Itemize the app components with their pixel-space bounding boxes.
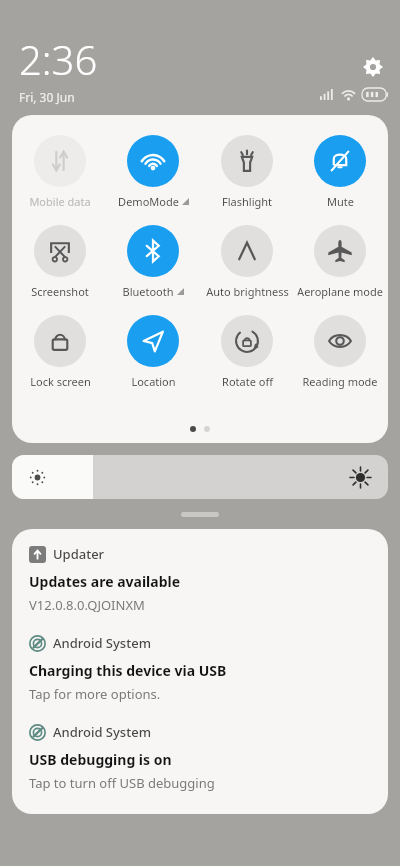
button[interactable]: Location (108, 313, 198, 391)
button[interactable]: Screenshot (15, 223, 105, 301)
staticText: 2:36 (19, 32, 98, 86)
button[interactable]: Lock screen (15, 313, 105, 391)
staticText: Fri, 30 Jun (19, 89, 75, 105)
staticText: Tap to turn off USB debugging (29, 774, 215, 792)
staticText: Android System (53, 634, 151, 652)
staticText: Android System (53, 723, 151, 741)
staticText: Tap for more options. (29, 685, 161, 703)
staticText: Location (131, 374, 176, 389)
button[interactable]: Reading mode (295, 313, 385, 391)
staticText: Charging this device via USB (29, 661, 227, 680)
button[interactable]: Auto brightness (202, 223, 292, 301)
staticText: Updates are available (29, 572, 181, 591)
button[interactable]: Mobile data (15, 133, 105, 211)
staticText: Updater (53, 545, 105, 563)
button[interactable]: Brightness (12, 455, 388, 499)
button[interactable]: Aeroplane mode (295, 223, 385, 301)
staticText: V12.0.8.0.QJOINXM (29, 596, 145, 614)
staticText: USB debugging is on (29, 750, 172, 769)
staticText: Mute (327, 194, 354, 209)
staticText: Bluetooth (122, 284, 174, 299)
button[interactable]: DemoMode (108, 133, 198, 211)
button[interactable]: Android System (29, 634, 371, 703)
button[interactable]: Rotate off (202, 313, 292, 391)
button[interactable]: Bluetooth (108, 223, 198, 301)
staticText: Flashlight (222, 194, 272, 209)
staticText: Aeroplane mode (297, 284, 383, 299)
button[interactable]: Settings (356, 50, 390, 84)
button[interactable]: Updater (29, 545, 371, 614)
staticText: Auto brightness (206, 284, 289, 299)
staticText: Reading mode (302, 374, 378, 389)
staticText: DemoMode (118, 194, 179, 209)
staticText: Mobile data (29, 194, 91, 209)
staticText: Rotate off (222, 374, 273, 389)
button[interactable]: Flashlight (202, 133, 292, 211)
staticText: Screenshot (31, 284, 89, 299)
button[interactable]: Android System (29, 723, 371, 792)
staticText: Lock screen (30, 374, 91, 389)
button[interactable]: Mute (295, 133, 385, 211)
